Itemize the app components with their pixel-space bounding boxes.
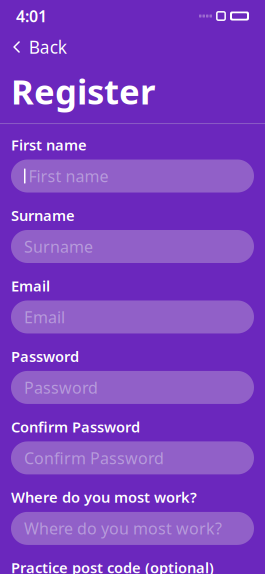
button[interactable]: Surname <box>11 230 254 263</box>
staticText: Where do you most work? <box>11 487 197 507</box>
staticText: Confirm Password <box>11 417 140 436</box>
staticText: Password <box>11 346 79 366</box>
button[interactable]: Confirm Password <box>11 441 254 474</box>
staticText: Surname <box>11 205 75 225</box>
staticText: Email <box>24 306 65 327</box>
button[interactable]: Email <box>11 300 254 333</box>
staticText: First name <box>28 165 108 187</box>
button[interactable]: Password <box>11 371 254 404</box>
staticText: Where do you most work? <box>24 518 222 539</box>
staticText: Email <box>11 276 50 295</box>
button[interactable]: Where do you most work? <box>11 512 254 545</box>
staticText: First name <box>11 135 87 154</box>
button[interactable]: First name <box>11 159 254 192</box>
staticText: Back <box>29 35 67 58</box>
staticText: Surname <box>24 236 93 257</box>
staticText: Password <box>24 377 98 398</box>
staticText: 4:01 <box>16 5 47 27</box>
staticText: Confirm Password <box>24 447 164 468</box>
staticText: Practice post code (optional) <box>11 558 214 574</box>
staticText: Register <box>11 68 155 114</box>
button[interactable]: Back <box>0 34 265 60</box>
